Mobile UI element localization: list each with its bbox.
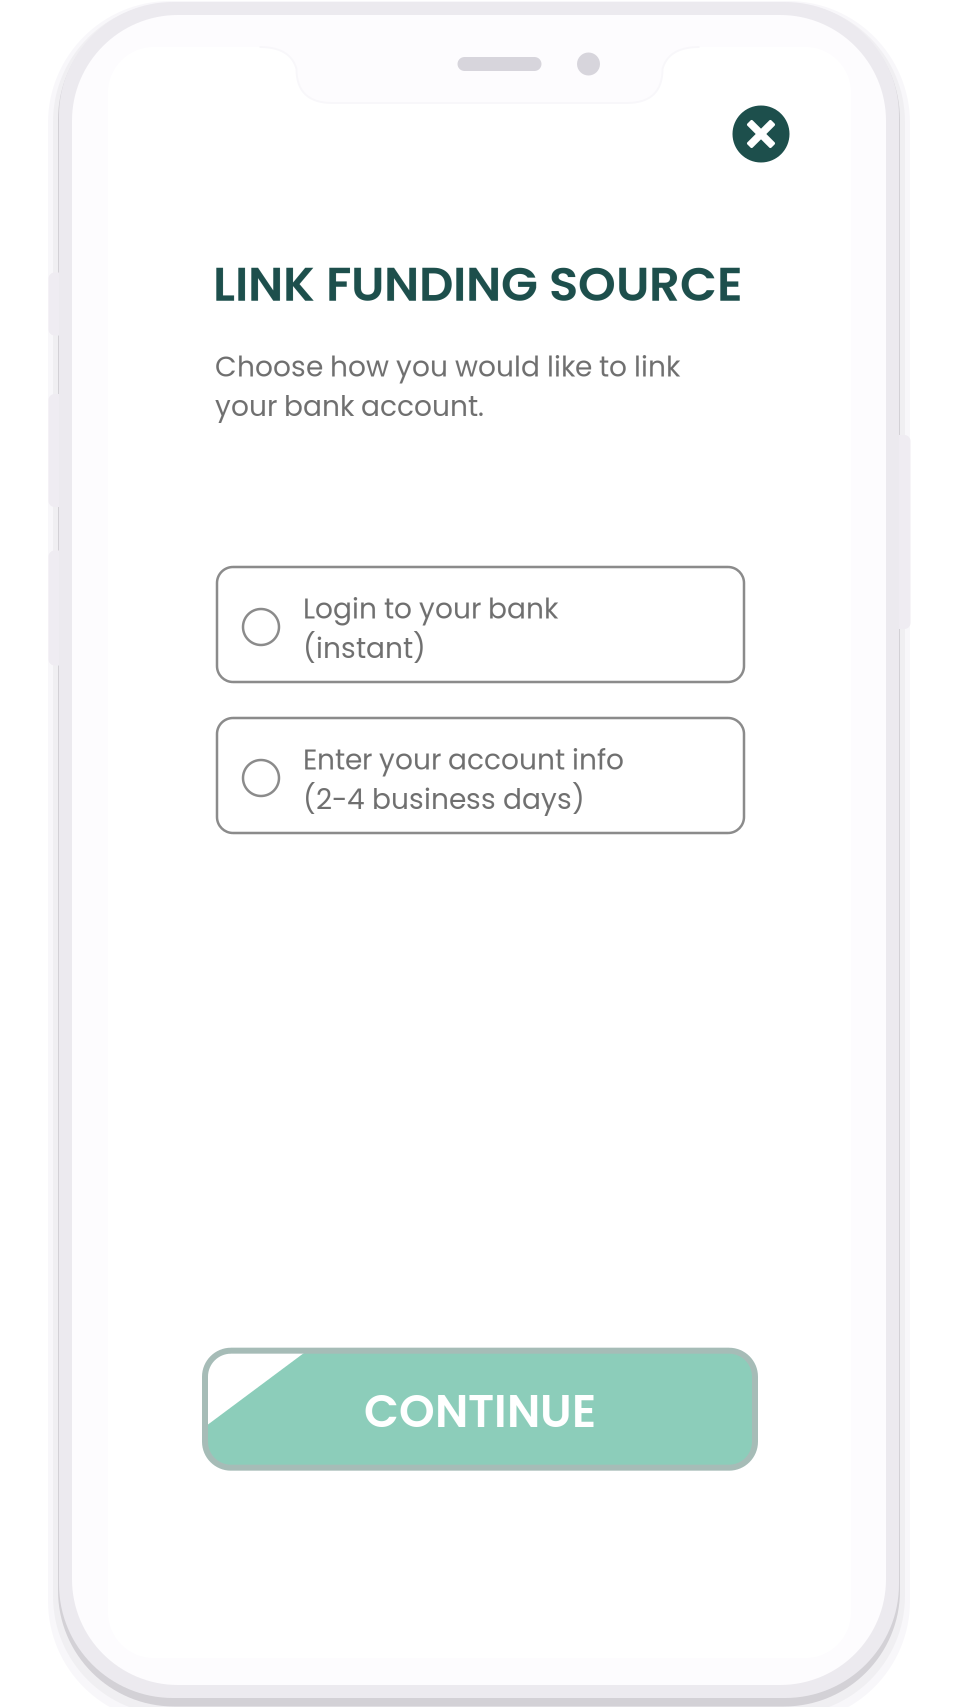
staticText: Enter your account info — [303, 740, 624, 779]
staticText: (instant) — [303, 629, 426, 668]
staticText: your bank account. — [215, 387, 484, 426]
staticText: CONTINUE — [364, 1379, 596, 1443]
staticText: Choose how you would like to link — [215, 347, 680, 386]
staticText: (2-4 business days) — [303, 780, 585, 819]
staticText: Login to your bank — [303, 589, 558, 628]
button[interactable]: Login to your bank — [217, 567, 744, 682]
button[interactable]: Enter your account info — [217, 718, 744, 833]
button[interactable]: Close — [721, 94, 801, 174]
button[interactable]: CONTINUE — [205, 1351, 755, 1468]
staticText: LINK FUNDING SOURCE — [213, 250, 743, 318]
